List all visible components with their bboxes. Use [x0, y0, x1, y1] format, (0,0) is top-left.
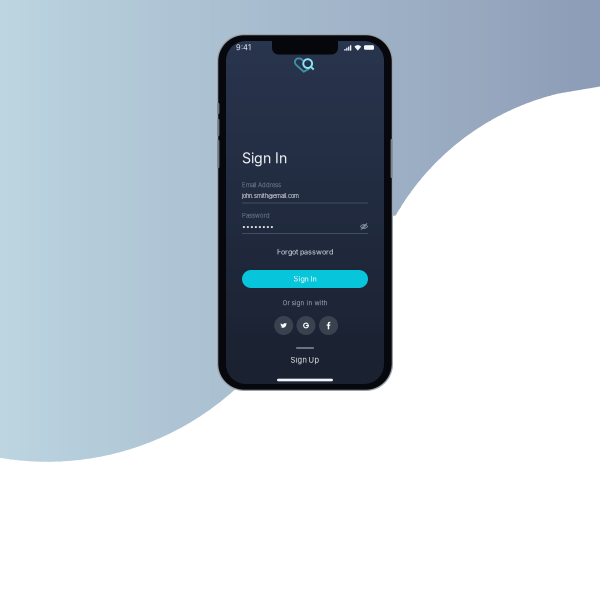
button[interactable]: Sign Up: [280, 354, 330, 365]
staticText: Sign In: [242, 149, 287, 166]
button[interactable]: Sign In: [242, 270, 368, 288]
staticText: 9:41: [236, 43, 251, 52]
staticText: ••••••••: [242, 222, 274, 231]
staticText: Email Address: [242, 181, 281, 189]
staticText: Sign Up: [290, 355, 319, 364]
staticText: Password: [242, 212, 270, 219]
button[interactable]: Sign in with Facebook: [319, 316, 338, 335]
button[interactable]: Sign in with Google: [296, 316, 315, 335]
button[interactable]: Sign in with Twitter: [274, 316, 293, 335]
button[interactable]: Forgot password: [242, 246, 368, 257]
staticText: Sign In: [293, 275, 316, 283]
staticText: Or sign in with: [282, 299, 327, 307]
staticText: john.smith@email.com: [242, 193, 299, 199]
staticText: Forgot password: [277, 248, 333, 256]
